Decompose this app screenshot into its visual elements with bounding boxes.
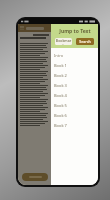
button[interactable]: Intro bbox=[51, 50, 98, 60]
button[interactable]: Bookmark bbox=[55, 38, 72, 45]
staticText: Jump to Text bbox=[59, 28, 91, 35]
button[interactable]: Book 5 bbox=[51, 100, 98, 110]
button[interactable]: Book 7 bbox=[51, 120, 98, 130]
button[interactable]: Book 4 bbox=[51, 90, 98, 100]
staticText: Intro bbox=[54, 53, 64, 58]
staticText: Book 4 bbox=[54, 93, 67, 98]
other: Menu bbox=[20, 26, 24, 30]
button[interactable]: Book 2 bbox=[51, 70, 98, 80]
button[interactable]: Book 1 bbox=[51, 60, 98, 70]
staticText: Book 3 bbox=[54, 83, 67, 88]
button[interactable]: Book 6 bbox=[51, 110, 98, 120]
staticText: Book 7 bbox=[54, 123, 67, 128]
button[interactable] bbox=[22, 173, 48, 181]
staticText: Search bbox=[79, 39, 91, 44]
staticText: Book 5 bbox=[54, 103, 67, 108]
button[interactable]: Menu bbox=[18, 24, 51, 32]
staticText: Book 6 bbox=[54, 113, 67, 118]
button[interactable]: Book 3 bbox=[51, 80, 98, 90]
staticText: Bookmark bbox=[55, 38, 72, 45]
staticText: Book 1 bbox=[54, 63, 67, 68]
staticText: Book 2 bbox=[54, 73, 67, 78]
button[interactable]: Search bbox=[76, 38, 94, 45]
